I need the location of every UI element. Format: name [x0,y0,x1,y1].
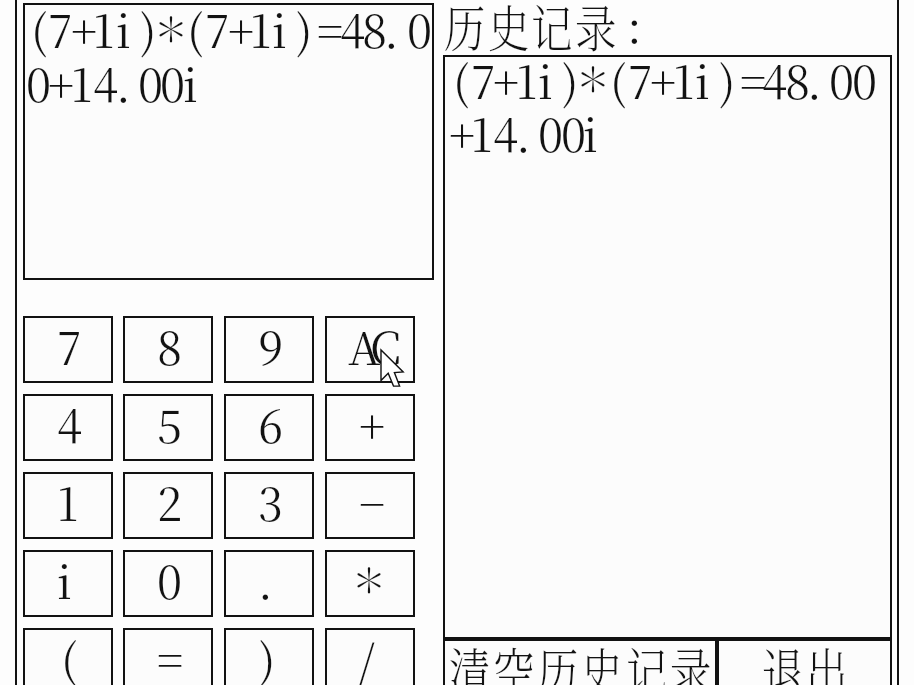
staticText: i [116,0,131,61]
staticText: 空 [493,632,534,685]
staticText: : [627,0,642,56]
staticText: = [740,47,767,112]
staticText: ( [453,47,470,112]
button[interactable]: 7 [23,316,113,383]
button[interactable]: History list [443,55,892,639]
staticText: A [348,313,381,378]
button[interactable]: Expression display [23,3,434,280]
button[interactable]: 9 [224,316,314,383]
staticText: 6 [258,391,284,456]
staticText: ( [187,0,204,61]
button[interactable]: 0 [123,550,213,617]
button[interactable]: A [325,316,415,383]
staticText: 4 [93,50,118,115]
staticText: 1 [250,0,272,61]
staticText: 7 [57,313,82,378]
staticText: 7 [48,0,73,61]
staticText: 0 [829,47,855,112]
staticText: 退 [762,632,803,685]
staticText: + [449,100,476,165]
staticText: ＊ [576,53,610,102]
button[interactable]: ) [224,628,314,685]
staticText: 1 [516,47,538,112]
button[interactable]: ( [23,628,113,685]
staticText: 4 [762,47,787,112]
staticText: 历 [444,0,485,61]
staticText: ＊ [352,554,386,603]
staticText: ( [610,47,627,112]
staticText: ＊ [154,3,188,52]
button[interactable]: 5 [123,394,213,461]
staticText: + [71,0,98,61]
staticText: 历 [537,632,578,685]
staticText: 清 [449,632,490,685]
staticText: 8 [362,0,388,61]
button[interactable]: + [325,394,415,461]
staticText: + [650,47,677,112]
staticText: + [228,0,255,61]
button[interactable]: . [224,550,314,617]
button[interactable]: 4 [23,394,113,461]
staticText: − [359,469,386,534]
staticText: 0 [26,50,52,115]
staticText: 3 [258,469,284,534]
staticText: 1 [71,50,93,115]
button[interactable]: 3 [224,472,314,539]
staticText: 1 [57,469,79,534]
staticText: 4 [493,100,518,165]
staticText: 录 [575,0,616,61]
staticText: ) [562,47,579,112]
button[interactable]: ＊ [325,550,415,617]
staticText: . [116,50,131,115]
staticText: + [359,391,386,456]
button[interactable]: 退 [717,639,892,685]
staticText: 记 [531,0,572,61]
staticText: 0 [852,47,878,112]
staticText: 1 [93,0,115,61]
staticText: ) [296,0,313,61]
staticText: 4 [340,0,365,61]
staticText: . [384,0,399,61]
staticText: 7 [205,0,230,61]
staticText: ) [259,625,276,685]
staticText: ) [719,47,736,112]
staticText: 0 [138,50,164,115]
staticText: 8 [157,313,183,378]
staticText: 史 [488,0,529,61]
staticText: 0 [561,100,587,165]
staticText: i [583,100,598,165]
button[interactable]: 1 [23,472,113,539]
staticText: 1 [471,100,493,165]
staticText: i [538,47,553,112]
staticText: = [317,0,344,61]
button[interactable]: 清 [443,639,717,685]
staticText: 1 [673,47,695,112]
staticText: 8 [785,47,811,112]
staticText: 4 [57,391,82,456]
staticText: ( [61,625,78,685]
staticText: ( [31,0,48,61]
staticText: 5 [157,391,183,456]
staticText: + [493,47,520,112]
button[interactable]: 8 [123,316,213,383]
staticText: i [695,47,710,112]
staticText: i [57,547,72,612]
button[interactable]: i [23,550,113,617]
button[interactable]: 2 [123,472,213,539]
staticText: 7 [471,47,496,112]
button[interactable]: 6 [224,394,314,461]
other: Pointer [381,350,407,390]
staticText: . [516,100,531,165]
staticText: i [272,0,287,61]
staticText: / [359,625,375,685]
staticText: 0 [538,100,564,165]
button[interactable]: = [123,628,213,685]
staticText: = [157,625,184,685]
staticText: 记 [626,632,667,685]
staticText: 0 [160,50,186,115]
button[interactable]: / [325,628,415,685]
staticText: 2 [157,469,183,534]
button[interactable]: − [325,472,415,539]
staticText: C [370,313,402,378]
staticText: 0 [407,0,433,61]
